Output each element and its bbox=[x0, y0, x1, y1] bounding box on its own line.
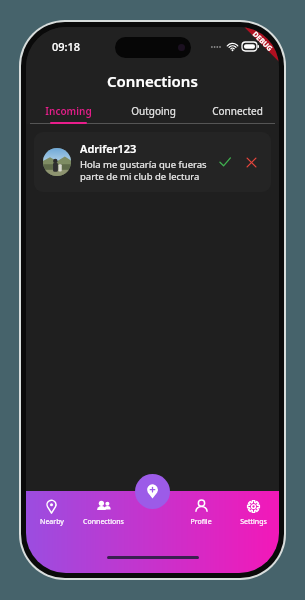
button[interactable]: Connections bbox=[77, 499, 129, 547]
button[interactable]: Adrifer123 bbox=[34, 132, 271, 192]
staticText: Connections bbox=[83, 517, 124, 527]
button[interactable]: Outgoing bbox=[111, 97, 195, 124]
button[interactable]: Settings bbox=[227, 499, 279, 547]
staticText: Incoming bbox=[45, 104, 92, 118]
staticText: Outgoing bbox=[131, 104, 176, 118]
staticText: Connected bbox=[212, 104, 263, 118]
staticText: Adrifer123 bbox=[80, 141, 137, 156]
button[interactable]: Nearby bbox=[26, 499, 77, 547]
staticText: 09:18 bbox=[52, 39, 81, 54]
button[interactable]: Decline bbox=[240, 151, 262, 173]
staticText: Settings bbox=[240, 517, 267, 527]
button[interactable]: Add location bbox=[135, 474, 170, 509]
staticText: Hola me gustaría que fueras parte de mi … bbox=[80, 158, 210, 183]
button[interactable]: Profile bbox=[175, 499, 227, 547]
button[interactable]: Incoming bbox=[26, 97, 111, 124]
button[interactable]: Connected bbox=[195, 97, 279, 124]
staticText: DEBUG bbox=[250, 30, 275, 54]
staticText: Connections bbox=[107, 71, 198, 91]
button[interactable]: Accept bbox=[214, 151, 236, 173]
staticText: Nearby bbox=[40, 517, 64, 527]
staticText: Profile bbox=[190, 517, 212, 527]
